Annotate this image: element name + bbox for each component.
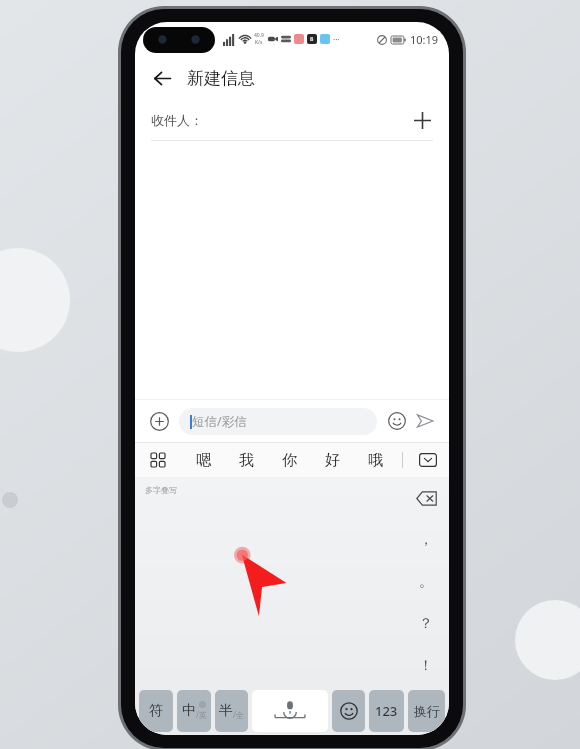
button[interactable]: 123 — [369, 690, 404, 732]
button[interactable]: 符 — [139, 690, 173, 732]
staticText: ！ — [419, 657, 433, 675]
staticText: 好 — [325, 451, 340, 470]
button[interactable]: 表情 — [383, 407, 411, 435]
staticText: ？ — [419, 615, 433, 633]
button[interactable]: 返回 — [145, 61, 179, 95]
staticText: 8 — [310, 35, 314, 43]
button[interactable]: 换行 — [408, 690, 445, 732]
button[interactable]: ， — [403, 519, 449, 561]
button[interactable]: 空格 / 语音输入 — [252, 690, 328, 732]
button[interactable]: ！ — [403, 645, 449, 687]
button[interactable]: 收起候选 — [407, 443, 449, 477]
staticText: 换行 — [414, 703, 440, 719]
staticText: /全 — [233, 709, 244, 720]
staticText: 新建信息 — [187, 68, 255, 89]
staticText: 40.9 — [254, 32, 264, 39]
staticText: 我 — [239, 451, 254, 470]
button[interactable]: 好 — [311, 443, 354, 477]
staticText: 收件人： — [151, 112, 203, 128]
button[interactable]: 表情 — [332, 690, 365, 732]
staticText: 短信/彩信 — [192, 413, 247, 430]
button[interactable]: 半 — [215, 690, 248, 732]
staticText: 多字叠写 — [145, 485, 177, 495]
staticText: /英 — [196, 709, 207, 720]
staticText: 嗯 — [196, 451, 211, 470]
button[interactable]: 你 — [268, 443, 311, 477]
button[interactable]: 我 — [225, 443, 268, 477]
button[interactable]: 添加附件 — [145, 407, 173, 435]
button[interactable]: 哦 — [354, 443, 397, 477]
button[interactable]: 。 — [403, 561, 449, 603]
button[interactable]: 嗯 — [181, 443, 225, 477]
staticText: ··· — [333, 34, 340, 45]
button[interactable]: 添加联系人 — [407, 105, 437, 135]
staticText: 你 — [282, 451, 297, 470]
button[interactable]: 发送 — [411, 407, 439, 435]
staticText: 符 — [149, 702, 163, 720]
button[interactable]: 更多功能 — [135, 443, 181, 477]
staticText: 123 — [375, 702, 398, 720]
staticText: 10:19 — [410, 32, 439, 47]
staticText: ， — [419, 531, 433, 549]
button[interactable]: 中 — [177, 690, 211, 732]
staticText: 哦 — [368, 451, 383, 470]
button[interactable]: ？ — [403, 603, 449, 645]
staticText: 中 — [182, 702, 196, 720]
button[interactable]: 删除 — [403, 477, 449, 519]
staticText: 。 — [419, 573, 433, 591]
staticText: 半 — [219, 702, 233, 720]
button[interactable]: 短信/彩信 — [179, 408, 377, 435]
staticText: K/s — [255, 39, 263, 46]
